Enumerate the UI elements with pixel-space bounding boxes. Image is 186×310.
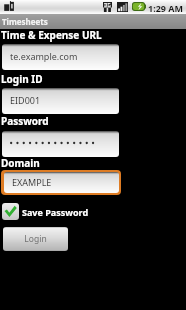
- other: Signal strength: [117, 2, 128, 12]
- staticText: Time & Expense URL: [1, 28, 102, 42]
- button[interactable]: Login: [3, 227, 68, 251]
- staticText: Domain: [1, 156, 40, 170]
- button[interactable]: te.example.com: [2, 44, 119, 70]
- staticText: Login: [24, 233, 47, 245]
- staticText: Login ID: [1, 72, 43, 86]
- staticText: te.example.com: [10, 50, 78, 62]
- other: 3G network: [103, 2, 112, 12]
- staticText: Timesheets: [2, 16, 48, 27]
- staticText: EID001: [10, 94, 41, 106]
- button[interactable]: EID001: [2, 88, 119, 114]
- button[interactable]: EXAMPLE: [1, 170, 121, 195]
- staticText: EXAMPLE: [12, 176, 52, 188]
- other: Notification: [4, 1, 15, 12]
- staticText: Save Password: [22, 206, 89, 218]
- button[interactable]: [2, 131, 119, 157]
- button[interactable]: Save Password: [2, 203, 89, 220]
- other: Battery charging: [132, 2, 146, 11]
- staticText: 1:29 AM: [148, 2, 184, 14]
- staticText: Password: [1, 114, 49, 128]
